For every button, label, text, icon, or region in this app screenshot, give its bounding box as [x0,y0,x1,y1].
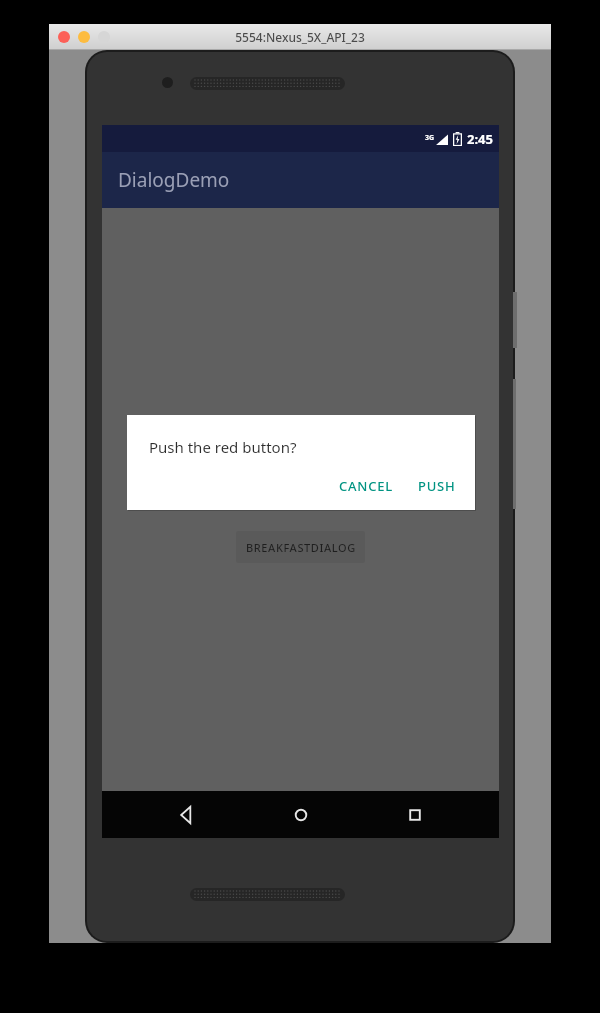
staticText: 3G [425,133,435,143]
button[interactable]: Back [155,791,217,838]
staticText: Push the red button? [149,437,297,457]
button[interactable]: Close [58,31,70,43]
button[interactable]: Home [270,791,332,838]
staticText: 5554:Nexus_5X_API_23 [235,29,365,45]
button[interactable]: Recents [384,791,446,838]
button[interactable]: CANCEL [330,470,403,502]
button[interactable]: Minimize [78,31,90,43]
staticText: DialogDemo [118,167,230,193]
staticText: 2:45 [467,130,493,148]
button[interactable]: BREAKFASTDIALOG [236,531,365,563]
staticText: CANCEL [339,477,394,495]
staticText: BREAKFASTDIALOG [246,540,356,555]
button[interactable]: PUSH [409,470,465,502]
staticText: PUSH [418,477,456,495]
